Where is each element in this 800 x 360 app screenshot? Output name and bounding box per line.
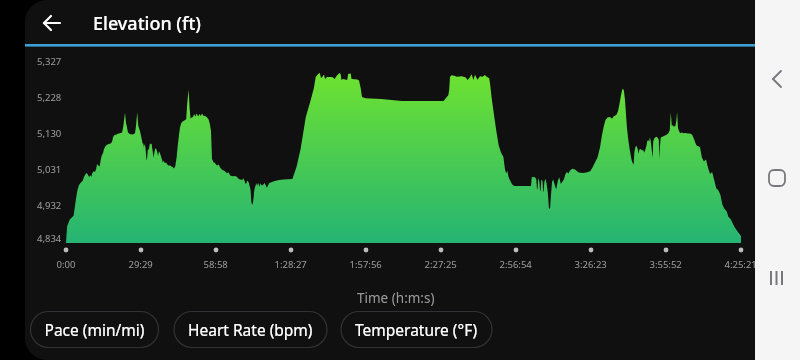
button[interactable]: Back (0, 0, 44, 44)
